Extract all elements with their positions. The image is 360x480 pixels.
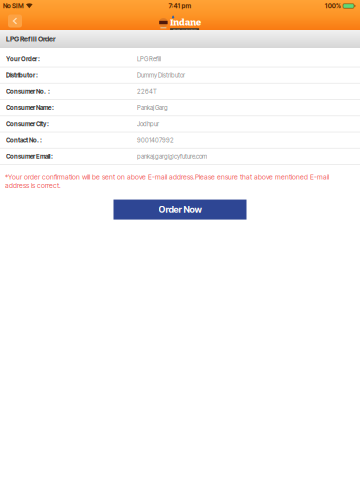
staticText: Consumer City : [6, 120, 49, 128]
staticText: Your Order : [6, 55, 40, 63]
staticText: 2264T [137, 88, 157, 95]
staticText: LPG Refill [137, 55, 161, 63]
staticText: Consumer Email : [6, 153, 53, 160]
staticText: Indane [170, 17, 201, 28]
staticText: Consumer Name : [6, 104, 54, 111]
staticText: THE FUEL OF GOODNESS [173, 28, 197, 31]
staticText: pankaj.garg@cyfuture.com [137, 153, 207, 160]
staticText: Order Now [158, 204, 201, 215]
staticText: Consumer No. : [6, 88, 50, 95]
staticText: 100% [325, 2, 341, 10]
staticText: 9001407992 [137, 136, 174, 144]
staticText: LPG Refill Order [6, 35, 56, 43]
button[interactable]: Back [8, 14, 22, 27]
staticText: Jodhpur [137, 120, 159, 128]
staticText: Dummy Distributor [137, 71, 185, 79]
staticText: No SIM [3, 2, 24, 10]
staticText: *Your order confirmation will be sent on… [5, 173, 329, 189]
button[interactable]: Order Now [113, 200, 246, 220]
staticText: Pankaj Garg [137, 104, 168, 111]
staticText: Contact No. : [6, 136, 42, 144]
staticText: Distributor : [6, 71, 38, 79]
staticText: 7:41 pm [168, 2, 191, 10]
